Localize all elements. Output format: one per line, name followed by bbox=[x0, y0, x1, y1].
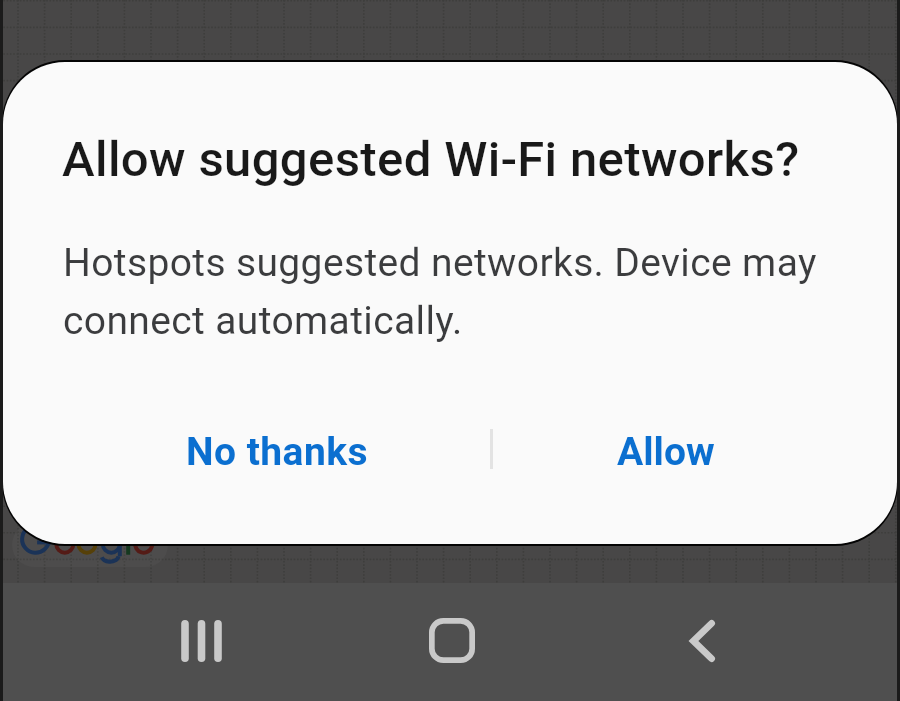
staticText: No thanks bbox=[186, 429, 369, 475]
button[interactable]: Home bbox=[410, 598, 494, 682]
button[interactable]: Allow bbox=[566, 402, 766, 502]
staticText: Allow bbox=[617, 429, 715, 475]
staticText: Hotspots suggested networks. Device may … bbox=[63, 240, 853, 343]
staticText: Allow suggested Wi-Fi networks? bbox=[62, 131, 800, 188]
button[interactable]: No thanks bbox=[147, 402, 407, 502]
button[interactable]: Recent apps bbox=[159, 599, 243, 683]
button[interactable]: Back bbox=[660, 599, 744, 683]
